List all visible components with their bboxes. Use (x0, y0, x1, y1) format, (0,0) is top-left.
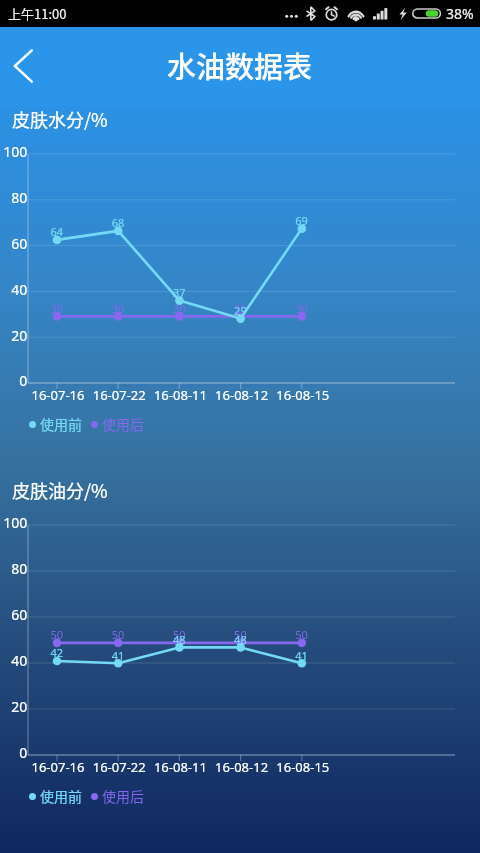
button[interactable]: Back (0, 42, 46, 90)
staticText: 38% (446, 4, 474, 23)
staticText: 使用后 (102, 414, 144, 434)
staticText: 皮肤油分/% (12, 477, 108, 503)
staticText: 使用前 (40, 414, 82, 434)
staticText: 水油数据表 (167, 44, 313, 86)
staticText: 上午11:00 (8, 4, 67, 23)
staticText: 皮肤水分/% (12, 106, 108, 132)
staticText: 使用后 (102, 786, 144, 806)
staticText: 使用前 (40, 786, 82, 806)
